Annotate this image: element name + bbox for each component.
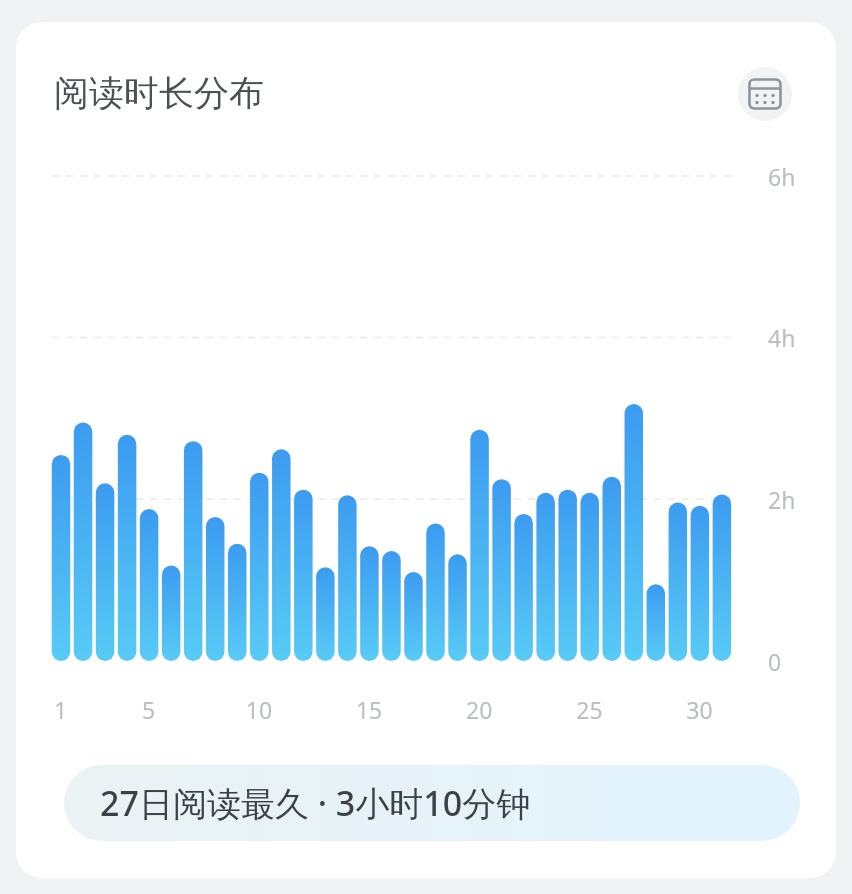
button[interactable]: Select date range [738,67,792,121]
button[interactable] [64,765,800,841]
